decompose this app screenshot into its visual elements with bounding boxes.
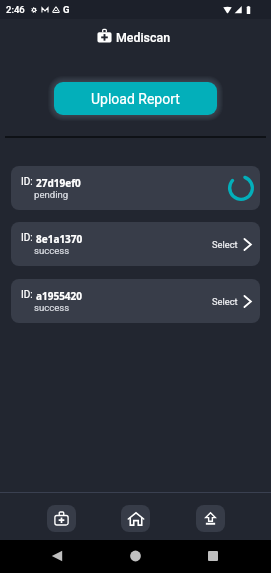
staticText: Mediscan bbox=[116, 30, 171, 45]
staticText: 8e1a1370 bbox=[36, 232, 83, 246]
staticText: a1955420 bbox=[36, 289, 83, 303]
staticText: ID: bbox=[21, 176, 36, 188]
staticText: Select bbox=[212, 239, 238, 250]
staticText: ID: bbox=[21, 289, 36, 301]
button[interactable]: ID: bbox=[11, 222, 260, 266]
staticText: success bbox=[34, 245, 70, 256]
button[interactable]: Home bbox=[121, 505, 150, 532]
staticText: 27d19ef0 bbox=[36, 176, 81, 190]
staticText: 2:46 bbox=[6, 4, 25, 15]
staticText: G bbox=[63, 4, 70, 15]
button[interactable]: ID: bbox=[11, 279, 260, 323]
staticText: ID: bbox=[21, 232, 36, 244]
button[interactable]: Upload Report bbox=[54, 82, 217, 115]
staticText: pending bbox=[34, 189, 69, 200]
button[interactable]: ID: bbox=[11, 166, 260, 210]
button[interactable]: Upload bbox=[196, 505, 225, 532]
staticText: Select bbox=[212, 296, 238, 307]
staticText: success bbox=[34, 302, 70, 313]
staticText: Upload Report bbox=[91, 91, 180, 107]
button[interactable]: Reports bbox=[47, 505, 76, 532]
